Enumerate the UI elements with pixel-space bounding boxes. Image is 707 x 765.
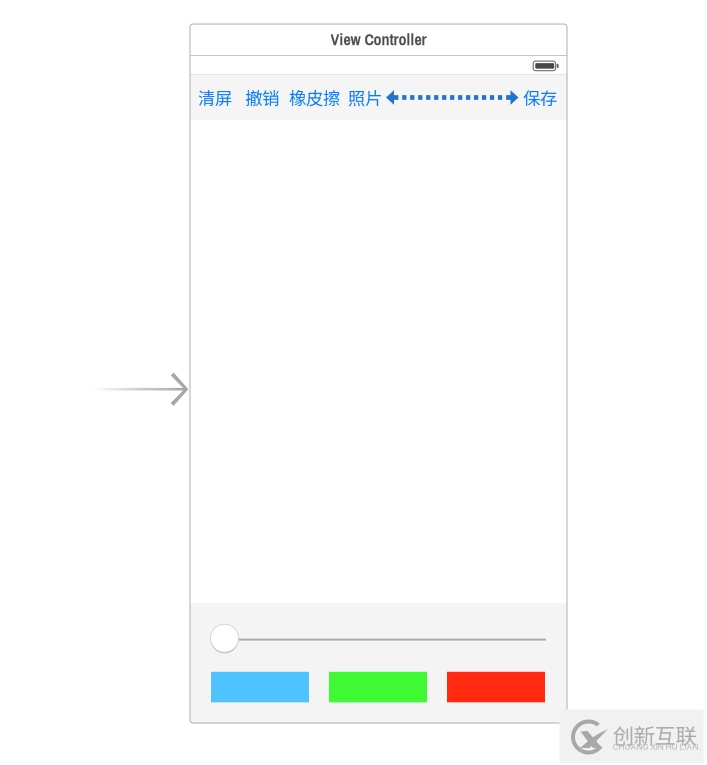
staticText: 保存 (523, 85, 557, 110)
staticText: 清屏 (198, 85, 232, 110)
staticText: CHUANG XIN HU LIAN (612, 742, 698, 752)
button[interactable]: 橡皮擦 (289, 75, 340, 120)
staticText: 照片 (348, 85, 382, 110)
staticText: 橡皮擦 (289, 85, 340, 110)
button[interactable]: Flexible space (386, 75, 519, 120)
button[interactable]: 照片 (348, 75, 382, 120)
staticText: 撤销 (245, 85, 279, 110)
staticText: View Controller (330, 29, 426, 50)
button[interactable]: 撤销 (245, 75, 279, 120)
button[interactable]: Brush size slider (210, 624, 546, 654)
button[interactable]: 保存 (523, 75, 557, 120)
button[interactable]: 清屏 (198, 75, 232, 120)
staticText: 创新互联 (612, 719, 696, 750)
